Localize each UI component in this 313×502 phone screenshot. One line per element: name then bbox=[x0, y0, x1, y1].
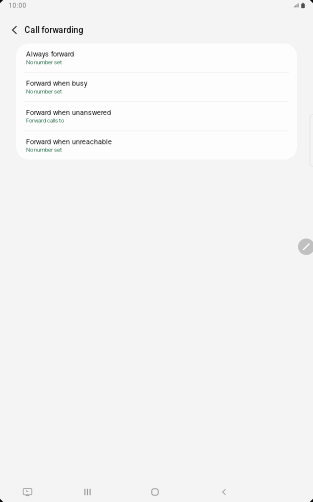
staticText: Forward when busy bbox=[26, 79, 87, 87]
staticText: No number set bbox=[26, 59, 62, 66]
staticText: Always forward bbox=[26, 50, 74, 58]
button[interactable]: Back bbox=[6, 19, 23, 41]
staticText: No number set bbox=[26, 146, 62, 153]
button[interactable]: Recent apps bbox=[55, 481, 120, 502]
staticText: Call forwarding bbox=[24, 25, 83, 35]
button[interactable]: Back bbox=[190, 481, 258, 502]
button[interactable]: Home bbox=[120, 481, 190, 502]
staticText: Forward when unanswered bbox=[26, 108, 111, 117]
button[interactable]: Edit bbox=[298, 238, 313, 255]
staticText: No number set bbox=[26, 88, 62, 95]
button[interactable]: Forward when busy bbox=[16, 73, 297, 101]
button[interactable]: Forward when unreachable bbox=[16, 131, 297, 160]
staticText: 10:00 bbox=[9, 2, 27, 9]
button[interactable]: Hide keyboard bbox=[0, 481, 55, 502]
staticText: Forward calls to bbox=[26, 117, 64, 124]
staticText: Forward when unreachable bbox=[26, 138, 112, 146]
button[interactable]: Always forward bbox=[16, 43, 297, 72]
button[interactable]: Forward when unanswered bbox=[16, 102, 297, 130]
